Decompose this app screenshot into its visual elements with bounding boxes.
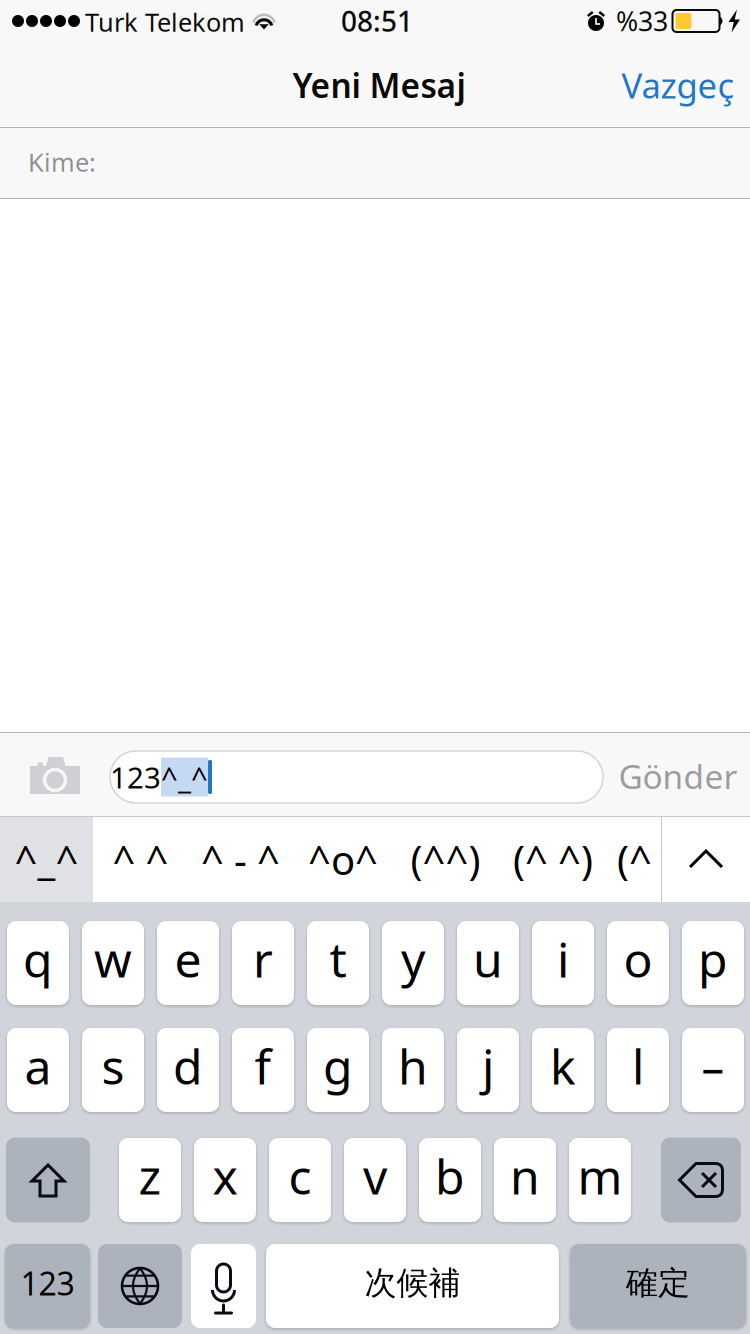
button[interactable]: Gönder — [613, 745, 743, 807]
button[interactable]: Vazgeç — [608, 53, 748, 117]
button[interactable]: l — [607, 1028, 669, 1112]
staticText: ^ ^ — [112, 833, 168, 886]
staticText: 123 — [20, 1262, 74, 1304]
button[interactable]: g — [307, 1028, 369, 1112]
button[interactable]: w — [82, 921, 144, 1005]
button[interactable]: a — [7, 1028, 69, 1112]
button[interactable]: p — [682, 921, 744, 1005]
button[interactable]: b — [419, 1138, 481, 1222]
button[interactable]: (^ — [608, 817, 661, 902]
staticText: ^_^ — [161, 757, 208, 796]
staticText: a — [24, 1034, 51, 1098]
button[interactable]: n — [494, 1138, 556, 1222]
staticText: e — [174, 927, 201, 991]
staticText: (^ — [617, 833, 652, 886]
button[interactable]: x — [194, 1138, 256, 1222]
staticText: y — [401, 927, 425, 991]
staticText: q — [23, 927, 53, 991]
button[interactable]: i — [532, 921, 594, 1005]
staticText: r — [253, 927, 273, 991]
staticText: j — [482, 1034, 494, 1098]
button[interactable]: y — [382, 921, 444, 1005]
staticText: 次候補 — [364, 1263, 460, 1303]
button[interactable]: Delete — [661, 1137, 741, 1222]
staticText: o — [623, 927, 652, 991]
staticText: (^^) — [410, 833, 480, 886]
button[interactable]: Camera — [17, 741, 93, 809]
button[interactable]: h — [382, 1028, 444, 1112]
staticText: %33 — [616, 3, 668, 39]
staticText: u — [473, 927, 503, 991]
staticText: t — [329, 927, 346, 991]
staticText: f — [254, 1034, 271, 1098]
staticText: Yeni Mesaj — [292, 63, 465, 107]
staticText: Turk Telekom — [85, 5, 245, 39]
staticText: z — [138, 1144, 161, 1208]
staticText: ^ - ^ — [201, 833, 280, 886]
button[interactable]: ^o^ — [293, 817, 393, 902]
button[interactable]: z — [119, 1138, 181, 1222]
staticText: h — [398, 1034, 428, 1098]
button[interactable]: r — [232, 921, 294, 1005]
button[interactable]: ^ ^ — [93, 817, 188, 902]
staticText: c — [288, 1144, 311, 1208]
staticText: n — [510, 1144, 540, 1208]
staticText: i — [557, 927, 569, 991]
staticText: g — [323, 1034, 353, 1098]
staticText: Gönder — [618, 754, 737, 798]
staticText: m — [577, 1144, 622, 1208]
button[interactable]: ^ - ^ — [188, 817, 293, 902]
button[interactable]: o — [607, 921, 669, 1005]
staticText: 確定 — [626, 1263, 690, 1303]
staticText: p — [698, 927, 728, 991]
button[interactable]: e — [157, 921, 219, 1005]
staticText: ^o^ — [308, 833, 378, 886]
button[interactable]: Shift — [6, 1137, 90, 1222]
staticText: d — [173, 1034, 203, 1098]
staticText: l — [632, 1034, 644, 1098]
button[interactable]: 次候補 — [266, 1244, 559, 1328]
button[interactable]: v — [344, 1138, 406, 1222]
staticText: Vazgeç — [621, 62, 734, 108]
button[interactable]: c — [269, 1138, 331, 1222]
staticText: – — [701, 1036, 724, 1096]
staticText: (^ ^) — [513, 833, 593, 886]
button[interactable]: m — [569, 1138, 631, 1222]
staticText: 123 — [110, 757, 161, 796]
button[interactable]: (^ ^) — [498, 817, 608, 902]
button[interactable]: t — [307, 921, 369, 1005]
button[interactable]: 確定 — [570, 1244, 746, 1328]
button[interactable]: – — [682, 1028, 744, 1112]
staticText: b — [435, 1144, 465, 1208]
staticText: ^_^ — [14, 833, 78, 886]
button[interactable]: Dictate — [191, 1244, 256, 1328]
button[interactable]: j — [457, 1028, 519, 1112]
button[interactable]: k — [532, 1028, 594, 1112]
button[interactable]: 123 — [5, 1244, 90, 1328]
button[interactable]: Expand candidates — [662, 817, 750, 902]
button[interactable]: s — [82, 1028, 144, 1112]
staticText: x — [212, 1144, 237, 1208]
button[interactable]: f — [232, 1028, 294, 1112]
button[interactable]: q — [7, 921, 69, 1005]
button[interactable]: ^_^ — [0, 817, 93, 902]
staticText: Kime: — [28, 145, 96, 179]
staticText: w — [94, 927, 132, 991]
button[interactable]: (^^) — [393, 817, 498, 902]
staticText: 08:51 — [341, 2, 413, 40]
staticText: k — [550, 1034, 576, 1098]
staticText: s — [101, 1034, 124, 1098]
button[interactable]: u — [457, 921, 519, 1005]
staticText: v — [363, 1144, 387, 1208]
button[interactable]: d — [157, 1028, 219, 1112]
button[interactable]: Switch keyboard — [98, 1244, 182, 1328]
